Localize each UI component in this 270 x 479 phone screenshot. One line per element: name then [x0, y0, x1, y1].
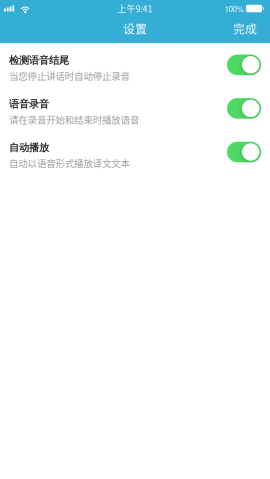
button[interactable]: 自动播放	[0, 130, 270, 174]
staticText: 语音录音	[9, 98, 49, 110]
button[interactable]: 完成	[224, 16, 270, 44]
staticText: 设置	[123, 20, 147, 37]
staticText: 请在录音开始和结束时播放语音	[9, 112, 139, 126]
button[interactable]: Toggle	[227, 54, 261, 75]
button[interactable]: 检测语音结尾	[0, 43, 270, 87]
staticText: 当您停止讲话时自动停止录音	[9, 69, 130, 82]
staticText: 检测语音结尾	[9, 54, 69, 67]
button[interactable]: Toggle	[227, 142, 261, 162]
staticText: 完成	[233, 20, 257, 37]
staticText: 自动以语音形式播放译文文本	[9, 156, 130, 170]
staticText: 自动播放	[9, 141, 49, 154]
staticText: 100%	[225, 3, 244, 14]
button[interactable]: 语音录音	[0, 87, 270, 130]
staticText: 上午9:41	[117, 2, 152, 15]
button[interactable]: Toggle	[227, 98, 261, 119]
